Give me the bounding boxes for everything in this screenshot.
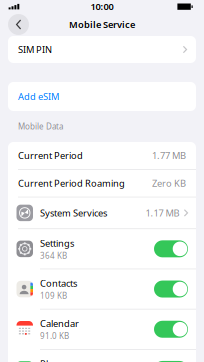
staticText: Calendar [40,317,79,330]
staticText: Current Period [18,149,83,162]
staticText: 109 KB [40,290,67,301]
staticText: Add eSIM [18,90,59,103]
staticText: SIM PIN [18,43,52,56]
button[interactable]: Cellular data for Calendar [154,321,188,338]
staticText: 1.77 MB [152,149,186,162]
staticText: 364 KB [40,250,67,261]
staticText: Contacts [40,277,77,289]
button[interactable]: Cellular data for Phone [154,361,188,362]
button[interactable]: Add eSIM [8,82,196,111]
staticText: 10:00 [90,0,113,13]
staticText: Phone [40,357,69,362]
staticText: 1.17 MB [145,207,179,219]
staticText: Current Period Roaming [18,177,125,189]
staticText: Mobile Data [18,121,63,132]
staticText: Settings [40,237,74,249]
button[interactable]: Cellular data for Settings [154,240,188,257]
staticText: Zero KB [152,177,186,189]
staticText: 91.0 KB [40,331,69,341]
staticText: System Services [40,207,107,219]
button[interactable]: SIM PIN [8,36,196,63]
button[interactable]: Back [4,13,33,36]
button[interactable]: System Services [8,197,196,228]
button[interactable]: Cellular data for Contacts [154,281,188,298]
staticText: Mobile Service [69,18,135,31]
